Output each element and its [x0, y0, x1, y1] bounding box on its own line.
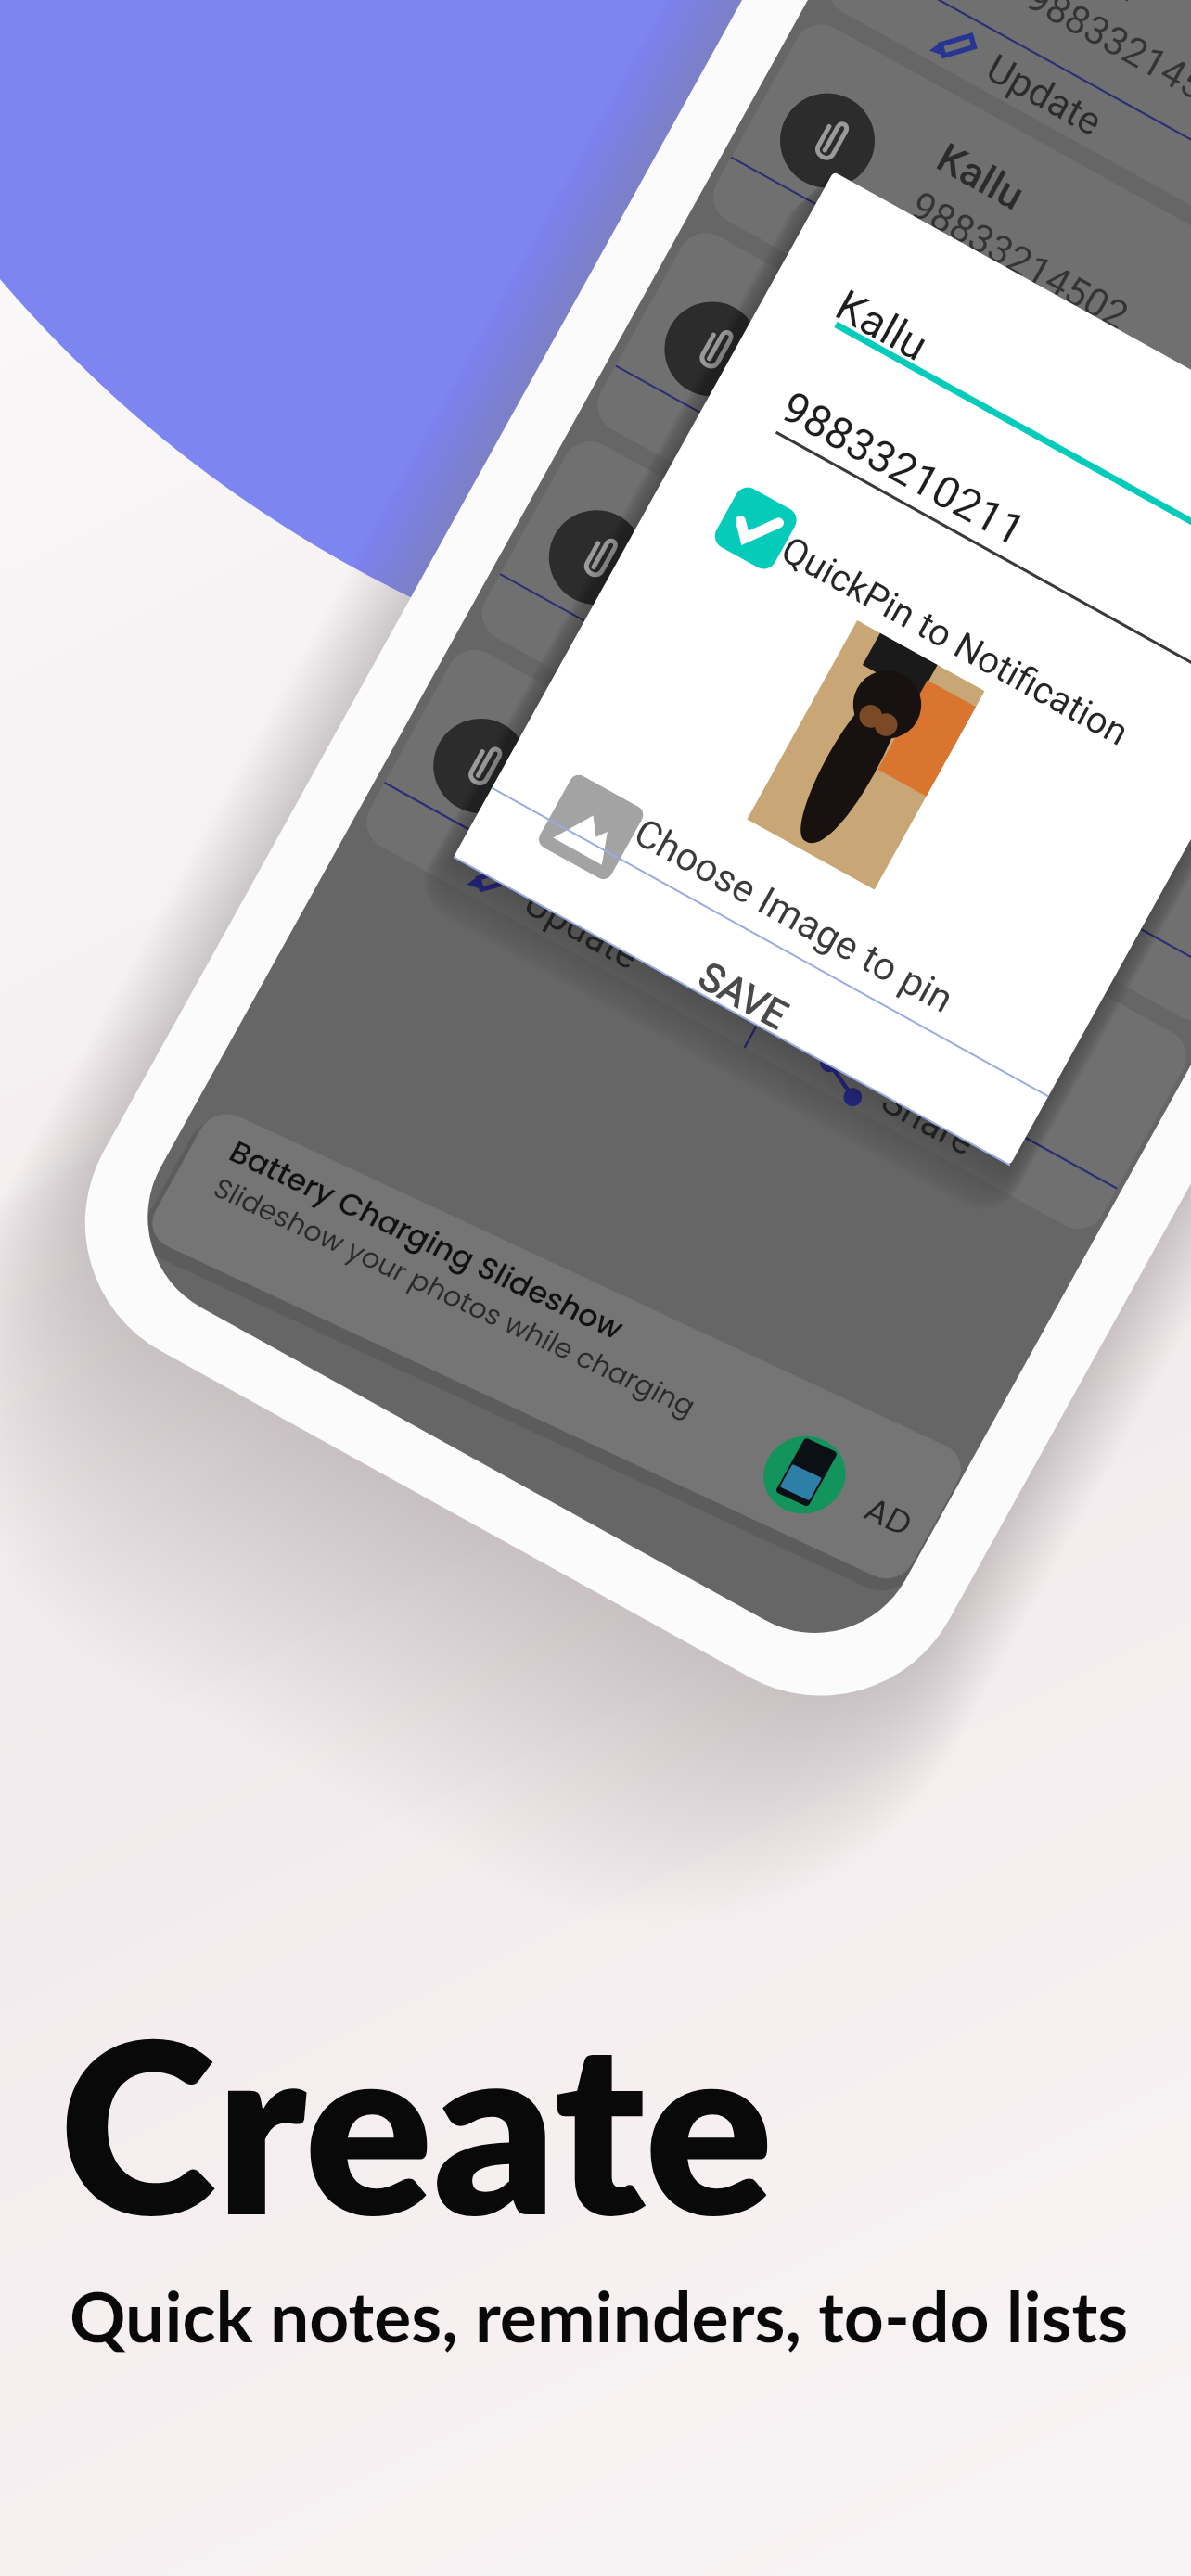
button[interactable]: Quick notes, reminders, to-do lists — [70, 2274, 1129, 2357]
button[interactable]: Create — [59, 1979, 774, 2264]
staticText: Quick notes, reminders, to-do lists — [70, 2274, 1129, 2357]
staticText: Create — [59, 1979, 774, 2264]
